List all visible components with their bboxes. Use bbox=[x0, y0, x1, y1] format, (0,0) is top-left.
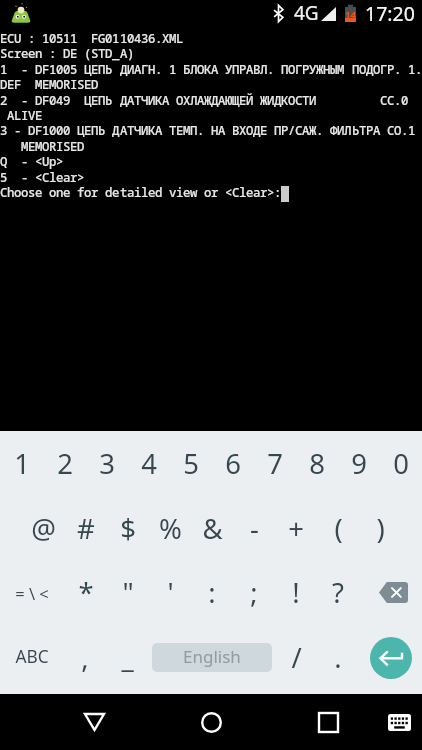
button[interactable]: , bbox=[64, 625, 106, 690]
button[interactable]: @ bbox=[22, 496, 65, 561]
staticText: D bbox=[35, 92, 43, 109]
staticText: d bbox=[105, 184, 113, 201]
button[interactable]: / bbox=[275, 625, 317, 690]
button[interactable]: 8 bbox=[296, 431, 338, 496]
button[interactable]: ( bbox=[317, 496, 359, 561]
staticText: А bbox=[218, 92, 226, 109]
button[interactable]: 5 bbox=[170, 431, 212, 496]
staticText: h bbox=[7, 184, 15, 201]
staticText: . bbox=[394, 61, 402, 78]
staticText: Ж bbox=[260, 92, 268, 109]
staticText: F bbox=[42, 61, 50, 78]
staticText: l bbox=[49, 169, 57, 186]
staticText: К bbox=[148, 122, 156, 139]
button[interactable]: ! bbox=[275, 560, 317, 625]
button[interactable]: Backspace bbox=[359, 560, 422, 625]
staticText: : bbox=[28, 30, 36, 47]
staticText: # bbox=[77, 510, 95, 547]
staticText: О bbox=[176, 92, 184, 109]
button[interactable]: + bbox=[275, 496, 317, 561]
staticText: D bbox=[77, 138, 85, 155]
staticText: p bbox=[49, 153, 57, 170]
button[interactable]: Switch keyboard bbox=[377, 700, 421, 744]
button[interactable]: ; bbox=[233, 560, 275, 625]
button[interactable]: 4 bbox=[128, 431, 170, 496]
staticText: С bbox=[295, 92, 303, 109]
button[interactable]: . bbox=[317, 625, 359, 690]
button[interactable]: % bbox=[149, 496, 191, 561]
staticText: A bbox=[120, 45, 128, 62]
staticText: . bbox=[334, 639, 342, 676]
button[interactable]: 6 bbox=[212, 431, 254, 496]
staticText: n bbox=[35, 45, 43, 62]
staticText: 0 bbox=[105, 30, 113, 47]
button[interactable]: 2 bbox=[43, 431, 86, 496]
button[interactable]: 1 bbox=[0, 431, 43, 496]
staticText: О bbox=[288, 92, 296, 109]
staticText: S bbox=[63, 138, 71, 155]
staticText: Р bbox=[366, 122, 374, 139]
staticText: w bbox=[190, 184, 198, 201]
button[interactable]: ? bbox=[317, 560, 359, 625]
button[interactable]: 0 bbox=[380, 431, 422, 496]
button[interactable]: & bbox=[191, 496, 233, 561]
button[interactable]: # bbox=[65, 496, 107, 561]
staticText: Л bbox=[260, 61, 268, 78]
staticText: C bbox=[42, 169, 50, 186]
staticText: 4 bbox=[141, 445, 157, 482]
staticText: $ bbox=[120, 510, 136, 547]
button[interactable]: = \ < bbox=[0, 560, 64, 625]
staticText: 14 bbox=[344, 8, 357, 21]
button[interactable]: : bbox=[191, 560, 233, 625]
staticText: И bbox=[267, 92, 275, 109]
staticText: E bbox=[42, 76, 50, 93]
staticText: : bbox=[49, 45, 57, 62]
staticText: Е bbox=[84, 122, 92, 139]
staticText: A bbox=[7, 107, 15, 124]
staticText: ( bbox=[334, 510, 343, 547]
staticText: Л bbox=[190, 92, 198, 109]
staticText: Х bbox=[183, 92, 191, 109]
staticText: e bbox=[246, 184, 254, 201]
staticText: M bbox=[35, 138, 43, 155]
button[interactable]: Home bbox=[189, 700, 233, 744]
button[interactable]: 3 bbox=[86, 431, 128, 496]
staticText: 1 bbox=[63, 30, 71, 47]
staticText: Ц bbox=[84, 61, 92, 78]
staticText: 1 bbox=[169, 61, 177, 78]
staticText: Е bbox=[176, 122, 184, 139]
staticText: Д bbox=[120, 92, 128, 109]
button[interactable]: _ bbox=[106, 625, 148, 690]
staticText: О bbox=[373, 61, 381, 78]
button[interactable]: " bbox=[107, 560, 149, 625]
staticText: 6 bbox=[225, 445, 241, 482]
staticText: Р bbox=[302, 61, 310, 78]
button[interactable]: 7 bbox=[254, 431, 296, 496]
staticText: Ж bbox=[204, 92, 212, 109]
staticText: ? bbox=[332, 574, 344, 611]
staticText: 1 bbox=[120, 30, 128, 47]
button[interactable]: Enter bbox=[370, 637, 412, 679]
button[interactable]: English bbox=[152, 643, 272, 672]
staticText: Ь bbox=[352, 122, 360, 139]
button[interactable]: ABC bbox=[0, 625, 64, 690]
button[interactable]: Back bbox=[72, 700, 116, 744]
staticText: . bbox=[155, 61, 163, 78]
staticText: C bbox=[7, 30, 15, 47]
staticText: 0 bbox=[56, 61, 64, 78]
staticText: . bbox=[197, 122, 205, 139]
button[interactable]: $ bbox=[107, 496, 149, 561]
staticText: E bbox=[7, 76, 15, 93]
staticText: > bbox=[56, 153, 64, 170]
staticText: D bbox=[91, 76, 99, 93]
staticText: 5 bbox=[0, 169, 8, 186]
button[interactable]: ' bbox=[149, 560, 191, 625]
staticText: Г bbox=[141, 61, 149, 78]
staticText: Р bbox=[239, 61, 247, 78]
button[interactable]: Recent apps bbox=[306, 700, 350, 744]
staticText: : bbox=[274, 184, 282, 201]
button[interactable]: - bbox=[233, 496, 275, 561]
button[interactable]: 9 bbox=[338, 431, 380, 496]
button[interactable]: ) bbox=[359, 496, 401, 561]
button[interactable]: * bbox=[64, 560, 107, 625]
